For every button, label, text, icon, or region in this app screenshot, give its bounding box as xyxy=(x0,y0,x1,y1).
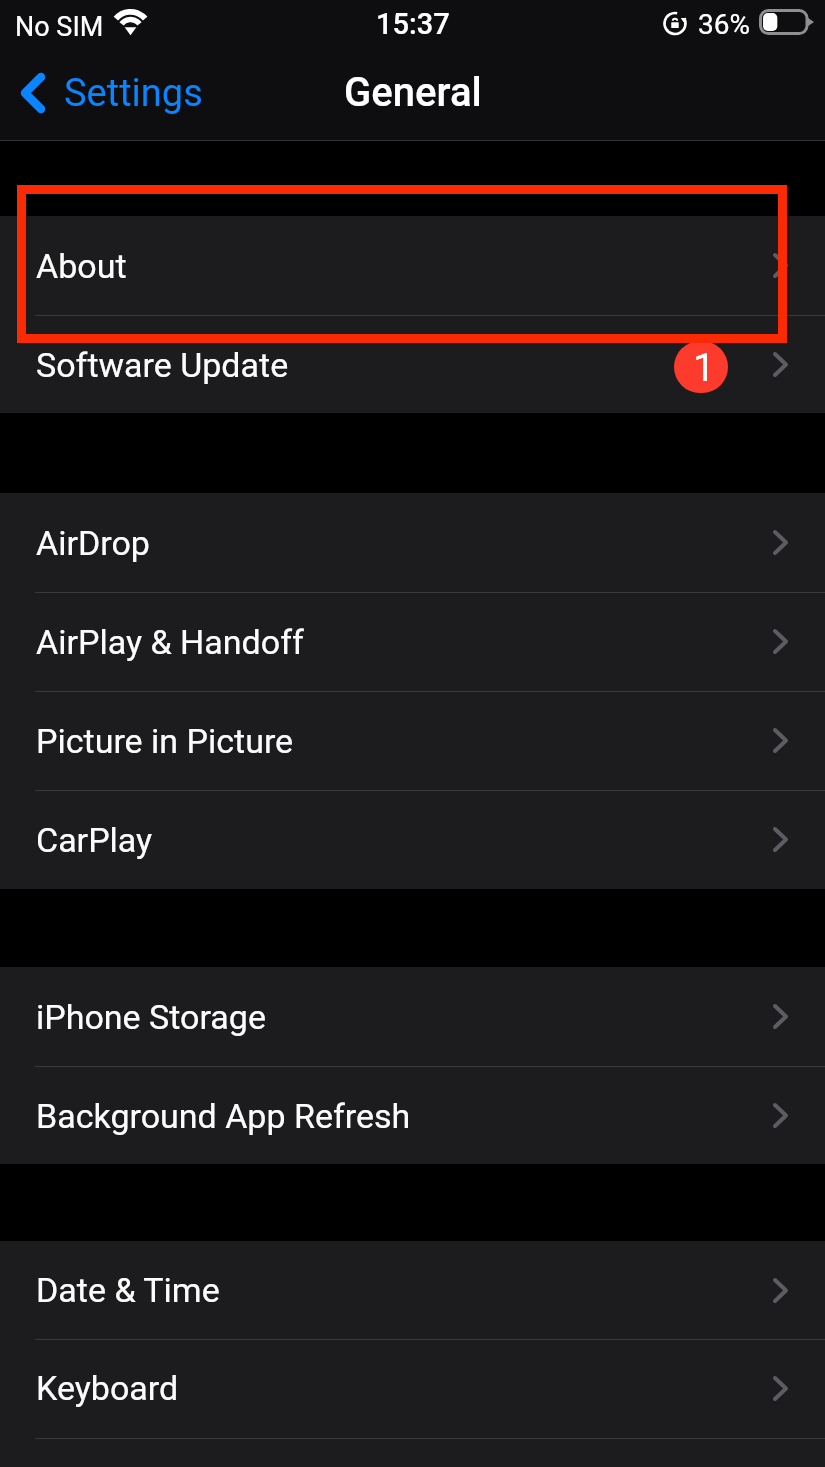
staticText: Background App Refresh xyxy=(36,1096,411,1136)
staticText: General xyxy=(344,69,482,116)
button[interactable]: Background App Refresh xyxy=(0,1066,825,1165)
other: Wi-Fi xyxy=(113,8,148,43)
staticText: About xyxy=(36,246,127,286)
staticText: No SIM xyxy=(15,11,104,43)
button[interactable]: Picture in Picture xyxy=(0,691,825,790)
other: Battery 36 percent xyxy=(759,9,814,35)
button[interactable]: About xyxy=(0,216,825,315)
staticText: 1 xyxy=(693,345,715,391)
button[interactable]: Software Update xyxy=(0,315,825,414)
staticText: AirPlay & Handoff xyxy=(36,622,304,662)
button[interactable]: Fonts xyxy=(0,1438,825,1467)
staticText: 15:37 xyxy=(376,7,450,41)
staticText: iPhone Storage xyxy=(36,997,266,1037)
button[interactable]: AirPlay & Handoff xyxy=(0,592,825,691)
staticText: AirDrop xyxy=(36,523,150,563)
button[interactable]: AirDrop xyxy=(0,493,825,592)
staticText: Settings xyxy=(64,71,203,116)
staticText: 36% xyxy=(698,8,750,41)
staticText: Software Update xyxy=(36,345,289,385)
button[interactable]: iPhone Storage xyxy=(0,967,825,1066)
button[interactable]: Keyboard xyxy=(0,1339,825,1437)
button[interactable]: Date & Time xyxy=(0,1241,825,1339)
staticText: Keyboard xyxy=(36,1368,179,1408)
staticText: CarPlay xyxy=(36,820,153,860)
button[interactable]: CarPlay xyxy=(0,790,825,889)
other: Rotation lock xyxy=(664,11,689,36)
staticText: Date & Time xyxy=(36,1270,220,1310)
button[interactable]: Settings xyxy=(0,71,217,124)
staticText: Picture in Picture xyxy=(36,721,294,761)
